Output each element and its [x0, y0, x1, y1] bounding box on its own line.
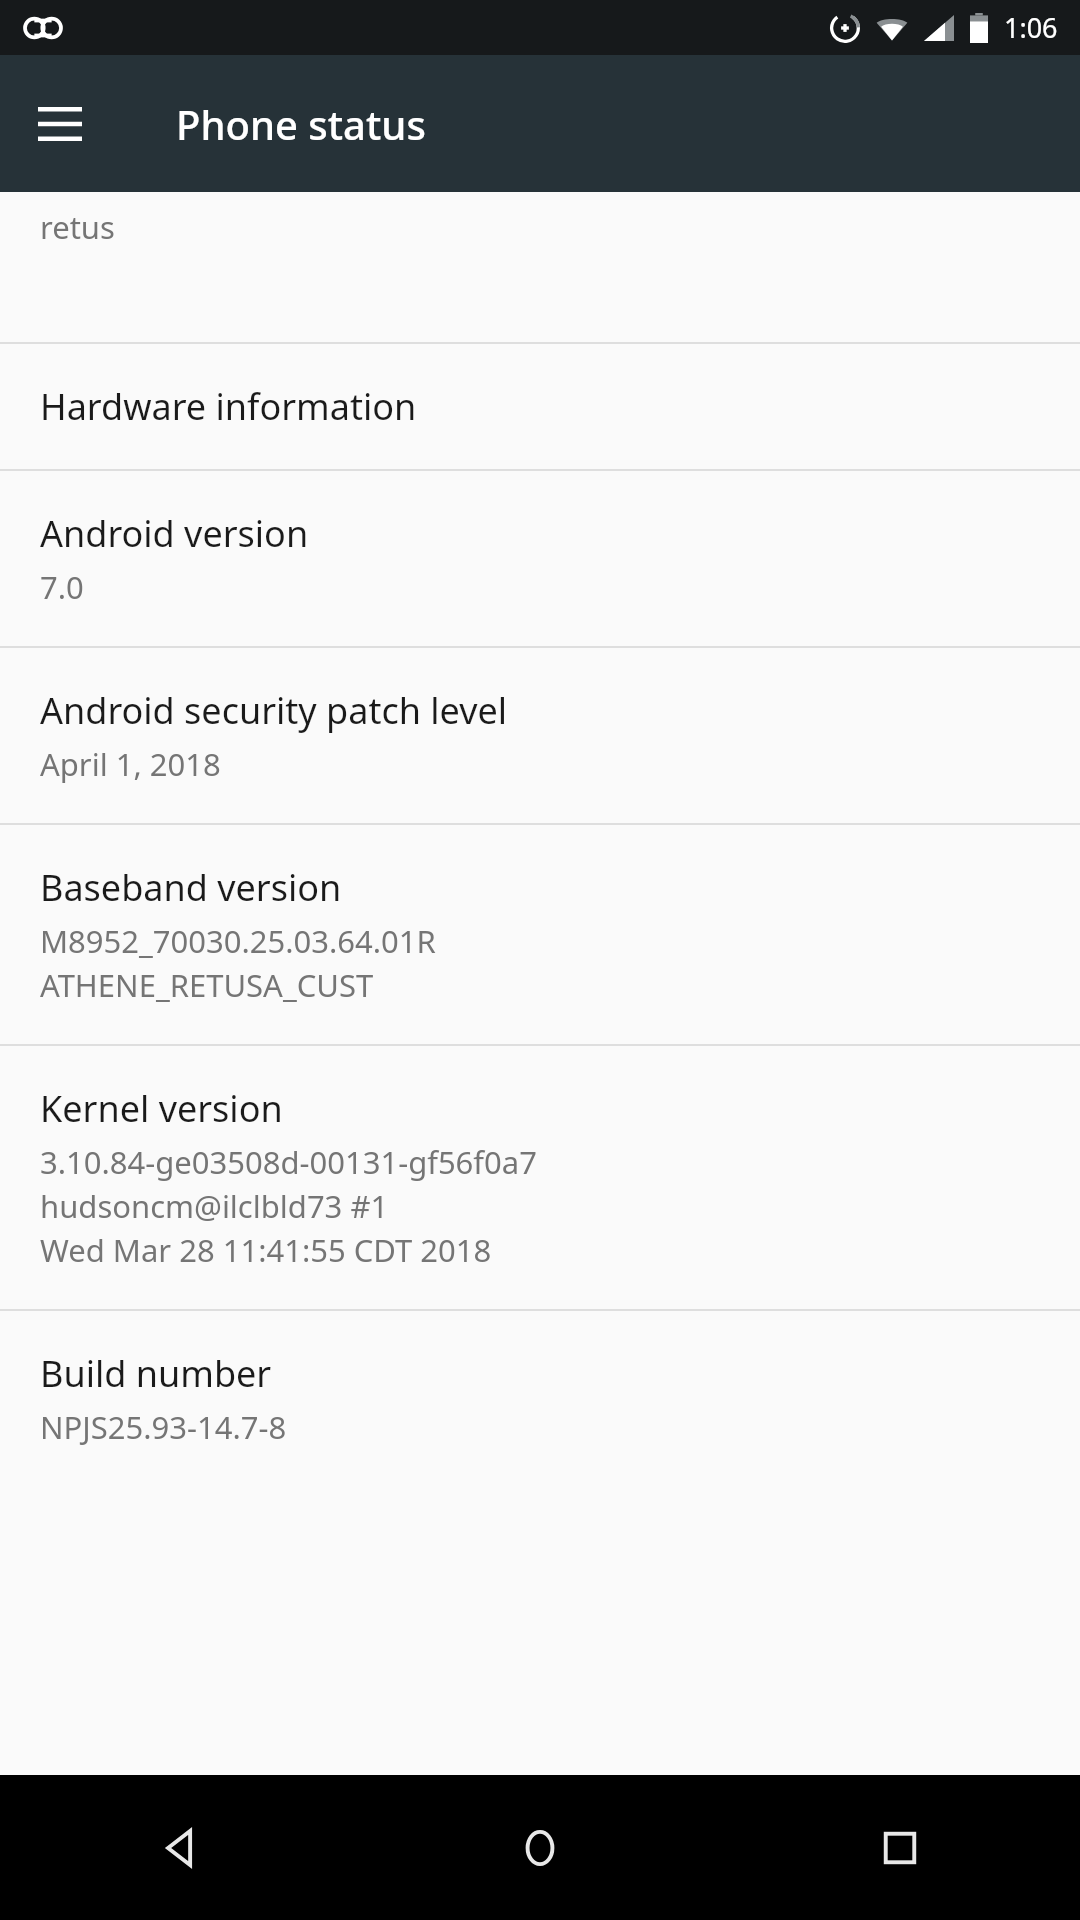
- button[interactable]: Android security patch level: [0, 648, 1080, 823]
- staticText: NPJS25.93-14.7-8: [40, 1406, 287, 1448]
- staticText: Build number: [40, 1349, 272, 1398]
- button[interactable]: Kernel version: [0, 1046, 1080, 1309]
- staticText: ATHENE_RETUSA_CUST: [40, 964, 374, 1006]
- button[interactable]: Open navigation menu: [24, 88, 96, 160]
- staticText: hudsoncm@ilclbld73 #1: [40, 1185, 389, 1227]
- staticText: 7.0: [40, 566, 84, 608]
- staticText: Baseband version: [40, 863, 342, 912]
- staticText: Phone status: [176, 97, 426, 151]
- staticText: 1:06: [1004, 9, 1058, 46]
- button[interactable]: Back: [0, 1775, 360, 1920]
- button[interactable]: Baseband version: [0, 825, 1080, 1044]
- button[interactable]: Home: [360, 1775, 720, 1920]
- staticText: Hardware information: [40, 382, 417, 431]
- staticText: M8952_70030.25.03.64.01R: [40, 920, 436, 962]
- button[interactable]: retus: [0, 192, 1080, 342]
- button[interactable]: Hardware information: [0, 344, 1080, 469]
- button[interactable]: Build number: [0, 1311, 1080, 1486]
- staticText: 3.10.84-ge03508d-00131-gf56f0a7: [40, 1141, 537, 1183]
- staticText: retus: [40, 206, 115, 248]
- staticText: Android version: [40, 509, 309, 558]
- button[interactable]: Recent apps: [720, 1775, 1080, 1920]
- staticText: Android security patch level: [40, 686, 508, 735]
- staticText: April 1, 2018: [40, 743, 221, 785]
- staticText: Kernel version: [40, 1084, 283, 1133]
- staticText: Wed Mar 28 11:41:55 CDT 2018: [40, 1229, 492, 1271]
- button[interactable]: Android version: [0, 471, 1080, 646]
